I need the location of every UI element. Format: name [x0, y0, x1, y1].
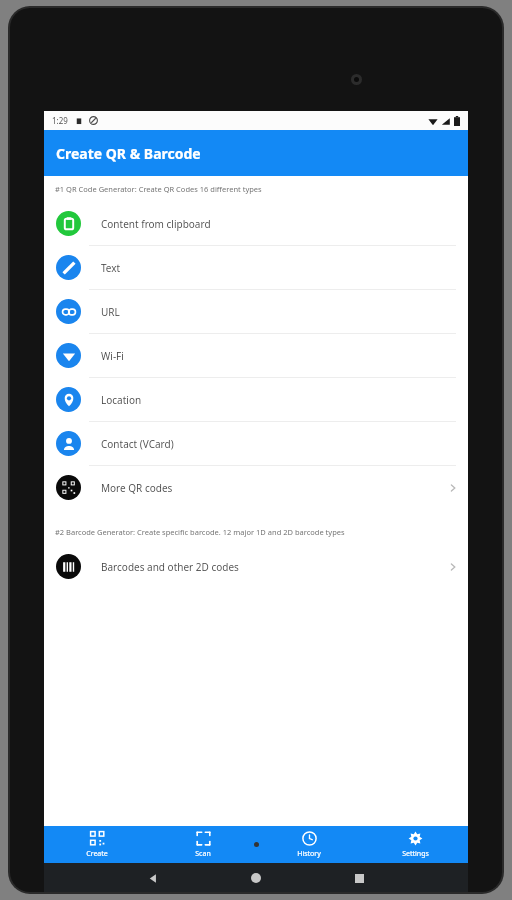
staticText: #2 Barcode Generator: Create specific ba…	[55, 527, 345, 537]
button[interactable]: Barcodes and other 2D codes	[44, 545, 468, 588]
staticText: #1 QR Code Generator: Create QR Codes 16…	[55, 184, 262, 194]
button[interactable]: Location	[44, 378, 468, 421]
button[interactable]: Home	[245, 867, 267, 889]
button[interactable]: Recent apps	[348, 867, 370, 889]
button[interactable]: URL	[44, 290, 468, 333]
staticText: More QR codes	[101, 481, 173, 495]
button[interactable]: Scan	[150, 826, 256, 863]
button[interactable]: Wi-Fi	[44, 334, 468, 377]
button[interactable]: Back	[142, 867, 164, 889]
staticText: Create	[86, 849, 108, 859]
button[interactable]: More QR codes	[44, 466, 468, 509]
button[interactable]: Settings	[362, 826, 468, 863]
button[interactable]: Content from clipboard	[44, 202, 468, 245]
staticText: Text	[101, 261, 121, 275]
button[interactable]: History	[256, 826, 362, 863]
button[interactable]: Contact (VCard)	[44, 422, 468, 465]
staticText: Location	[101, 393, 142, 407]
staticText: Scan	[195, 849, 211, 859]
staticText: Barcodes and other 2D codes	[101, 560, 239, 574]
staticText: Wi-Fi	[101, 349, 124, 363]
button[interactable]: Text	[44, 246, 468, 289]
staticText: Content from clipboard	[101, 217, 211, 231]
staticText: 1:29	[52, 115, 68, 126]
staticText: History	[297, 849, 321, 859]
staticText: Settings	[402, 849, 429, 859]
staticText: URL	[101, 305, 120, 319]
staticText: Create QR & Barcode	[56, 144, 201, 163]
staticText: Contact (VCard)	[101, 437, 174, 451]
button[interactable]: Create	[44, 826, 150, 863]
